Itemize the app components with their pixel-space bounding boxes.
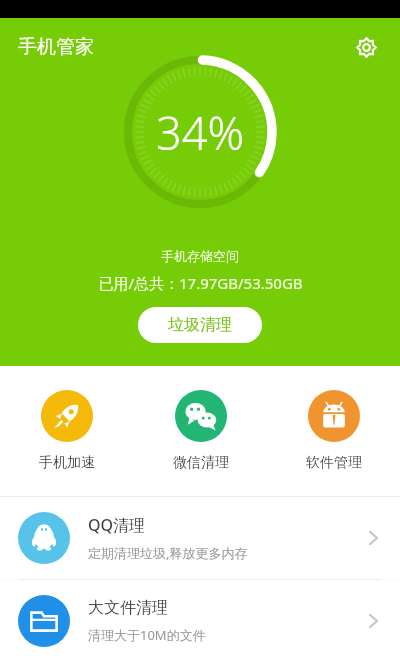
staticText: 手机管家 bbox=[18, 35, 94, 59]
button[interactable]: QQ清理 bbox=[0, 497, 400, 579]
staticText: 微信清理 bbox=[173, 454, 229, 472]
staticText: 34% bbox=[156, 102, 244, 163]
staticText: 清理大于10M的文件 bbox=[88, 626, 206, 644]
staticText: 定期清理垃圾,释放更多内存 bbox=[88, 544, 248, 562]
staticText: QQ清理 bbox=[88, 514, 146, 536]
button[interactable]: 软件管理 bbox=[267, 366, 400, 496]
staticText: 软件管理 bbox=[306, 454, 362, 472]
staticText: 大文件清理 bbox=[88, 598, 168, 618]
staticText: 手机加速 bbox=[39, 454, 95, 472]
button[interactable]: 垃圾清理 bbox=[138, 307, 262, 343]
staticText: 手机存储空间 bbox=[161, 248, 239, 264]
staticText: 已用/总共：17.97GB/53.50GB bbox=[98, 273, 303, 293]
button[interactable]: 微信清理 bbox=[134, 366, 267, 496]
staticText: 垃圾清理 bbox=[168, 315, 232, 335]
button[interactable]: 手机加速 bbox=[0, 366, 134, 496]
button[interactable]: 大文件清理 bbox=[0, 580, 400, 661]
button[interactable]: Settings bbox=[346, 27, 386, 67]
